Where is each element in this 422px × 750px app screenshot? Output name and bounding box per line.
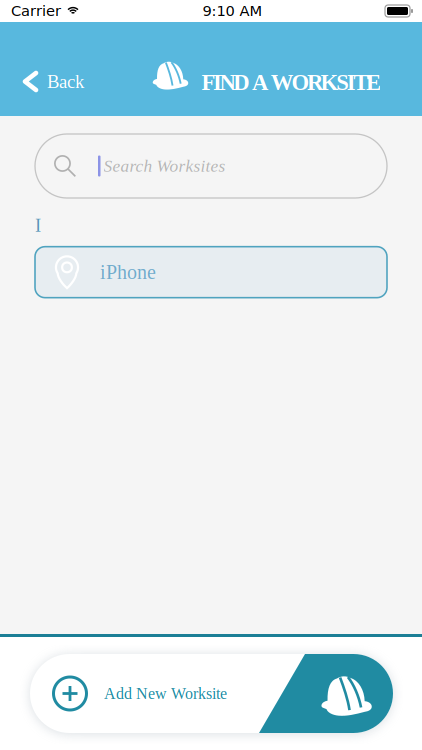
button[interactable]: Add New Worksite [30, 654, 393, 733]
staticText: iPhone [100, 261, 156, 283]
staticText: Add New Worksite [104, 685, 227, 702]
staticText: I [35, 215, 41, 236]
staticText: FIND A WORKSITE [201, 70, 381, 95]
button[interactable]: Back [0, 59, 98, 96]
staticText: Back [47, 71, 84, 92]
staticText: Search Worksites [103, 156, 225, 176]
staticText: 9:10 AM [202, 2, 262, 20]
staticText: Carrier [11, 2, 61, 20]
button[interactable]: iPhone [35, 247, 387, 298]
